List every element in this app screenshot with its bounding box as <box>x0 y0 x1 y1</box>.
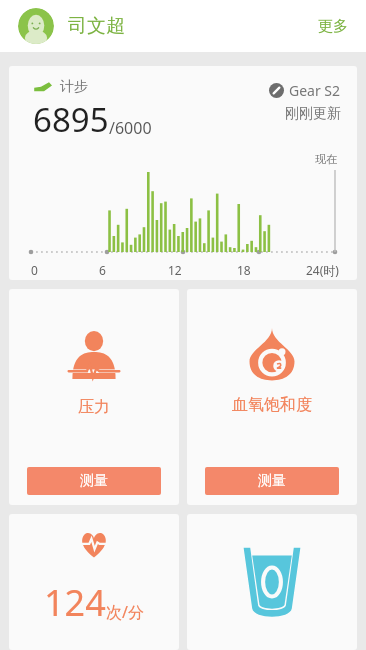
staticText: 计步 <box>60 78 88 96</box>
staticText: 124 <box>44 578 106 627</box>
staticText: 12 <box>168 262 182 278</box>
button[interactable]: 测量 <box>205 467 339 495</box>
staticText: 更多 <box>318 17 348 36</box>
staticText: 司文超 <box>68 14 125 38</box>
staticText: 压力 <box>78 397 110 417</box>
button[interactable]: Profile avatar <box>18 8 54 44</box>
staticText: 测量 <box>258 472 286 490</box>
staticText: 测量 <box>80 472 108 490</box>
staticText: 24(时) <box>306 262 339 278</box>
staticText: 18 <box>237 262 251 278</box>
button[interactable]: 124 <box>9 514 179 650</box>
button[interactable]: 更多 <box>300 7 366 46</box>
button[interactable]: 测量 <box>27 467 161 495</box>
staticText: 血氧饱和度 <box>232 395 312 415</box>
staticText: /6000 <box>109 117 152 139</box>
button[interactable]: 压力 <box>9 289 179 505</box>
staticText: 次/分 <box>106 601 144 623</box>
button[interactable]: 血氧饱和度 <box>187 289 357 505</box>
staticText: 6895 <box>33 97 109 142</box>
staticText: Gear S2 <box>289 81 341 100</box>
staticText: 0 <box>31 262 38 278</box>
staticText: 现在 <box>315 152 337 166</box>
staticText: 刚刚更新 <box>285 105 341 123</box>
button[interactable] <box>187 514 357 650</box>
staticText: 6 <box>99 262 106 278</box>
button[interactable]: 计步 <box>9 66 357 280</box>
